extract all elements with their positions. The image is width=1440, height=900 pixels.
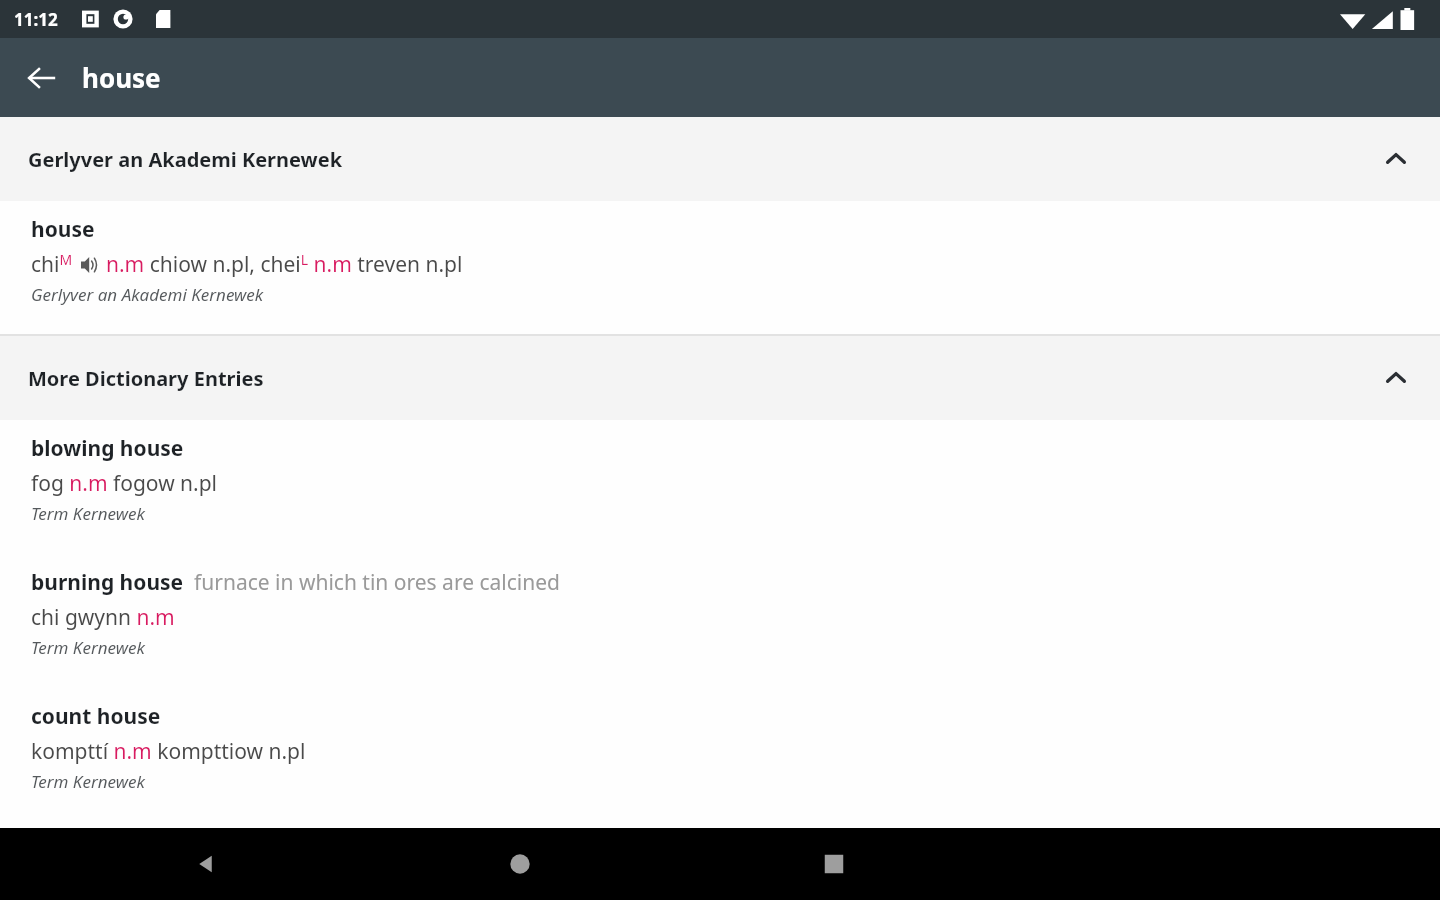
staticText: blowing house (31, 434, 184, 463)
staticText: n.m chiow n.pl, cheiL n.m treven n.pl (106, 250, 463, 279)
button[interactable]: house (0, 201, 1440, 334)
button[interactable]: Back (14, 50, 70, 106)
button[interactable]: Recent apps (802, 832, 866, 896)
staticText: fog n.m fogow n.pl (31, 469, 218, 498)
button[interactable]: Gerlyver an Akademi Kernewek (0, 117, 1440, 201)
staticText: Gerlyver an Akademi Kernewek (28, 146, 1374, 173)
staticText: chiM (31, 250, 73, 279)
button[interactable]: blowing house (0, 420, 1440, 554)
staticText: Term Kernewek (31, 770, 145, 793)
button[interactable]: Back (174, 832, 238, 896)
staticText: Term Kernewek (31, 502, 145, 525)
button[interactable]: burning house furnace in which tin ores … (0, 554, 1440, 688)
button[interactable]: Play pronunciation (79, 254, 101, 276)
staticText: chi gwynn n.m (31, 603, 175, 632)
staticText: kompttí n.m kompttiow n.pl (31, 737, 306, 766)
staticText: More Dictionary Entries (28, 365, 1374, 392)
staticText: house (82, 60, 161, 95)
staticText: Term Kernewek (31, 636, 145, 659)
staticText: Gerlyver an Akademi Kernewek (31, 283, 264, 306)
button[interactable]: Home (488, 832, 552, 896)
staticText: burning house furnace in which tin ores … (31, 568, 560, 597)
button[interactable]: More Dictionary Entries (0, 336, 1440, 420)
staticText: house (31, 215, 95, 244)
staticText: 11:12 (14, 8, 58, 31)
staticText: count house (31, 702, 161, 731)
button[interactable]: count house (0, 688, 1440, 814)
